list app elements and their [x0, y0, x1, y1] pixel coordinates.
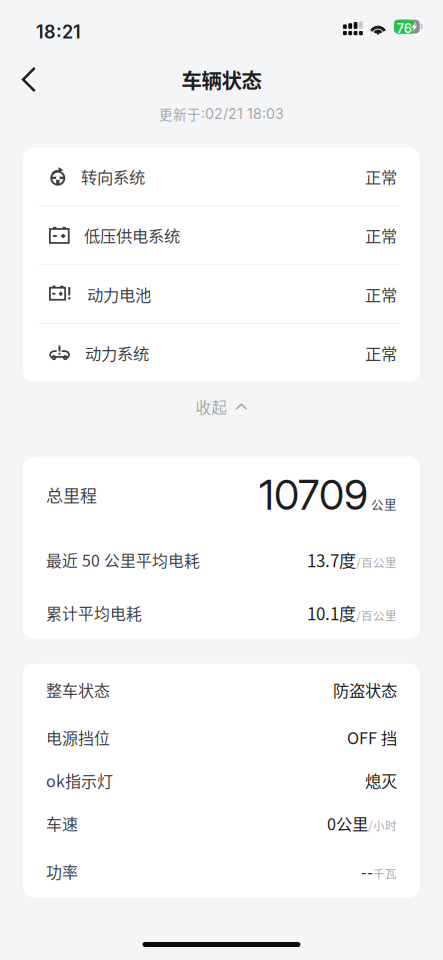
staticText: 低压供电系统 [84, 223, 180, 247]
staticText: 正常 [365, 282, 397, 306]
button[interactable]: 整车状态 [23, 664, 420, 716]
staticText: 动力电池 [87, 282, 151, 306]
button[interactable]: 电源挡位 [23, 716, 420, 759]
button[interactable]: 车速 [23, 802, 420, 845]
staticText: 10.1度 [307, 600, 356, 625]
staticText: 更新于 [159, 104, 201, 123]
button[interactable]: Back [0, 54, 58, 104]
button[interactable]: 总里程 [23, 457, 420, 533]
staticText: 正常 [365, 223, 397, 247]
staticText: 功率 [46, 860, 78, 883]
staticText: 公里 [371, 495, 397, 513]
staticText: 最近 50 公里平均电耗 [46, 548, 200, 571]
button[interactable]: 转向系统 [23, 147, 420, 205]
staticText: 累计平均电耗 [46, 601, 142, 624]
button[interactable]: ok指示灯 [23, 759, 420, 802]
button[interactable]: 累计平均电耗 [23, 587, 420, 639]
staticText: 76 [397, 21, 412, 36]
staticText: 防盗状态 [333, 678, 397, 701]
staticText: 电源挡位 [46, 726, 110, 749]
staticText: 0公里 [327, 811, 368, 835]
button[interactable]: 最近 50 公里平均电耗 [23, 533, 420, 587]
button[interactable]: 动力系统 [23, 324, 420, 382]
staticText: 车辆状态 [181, 65, 261, 94]
button[interactable]: 功率 [23, 845, 420, 898]
staticText: 收起 [195, 395, 227, 418]
staticText: /百公里 [356, 554, 397, 570]
staticText: ok指示灯 [46, 769, 113, 792]
staticText: 10709 [259, 470, 368, 519]
button[interactable]: 动力电池 [23, 265, 420, 323]
staticText: :02/21 18:03 [201, 105, 284, 122]
staticText: 整车状态 [46, 678, 110, 701]
staticText: 千瓦 [373, 865, 397, 882]
staticText: -- [361, 859, 373, 883]
staticText: 动力系统 [85, 341, 149, 365]
staticText: 熄灭 [365, 768, 397, 792]
staticText: 车速 [46, 812, 78, 835]
button[interactable]: 低压供电系统 [23, 206, 420, 264]
staticText: 转向系统 [81, 165, 145, 188]
staticText: 正常 [365, 341, 397, 365]
button[interactable]: 收起 [195, 382, 247, 432]
staticText: OFF 挡 [347, 725, 397, 749]
staticText: 18:21 [36, 21, 81, 43]
staticText: /小时 [368, 817, 397, 834]
staticText: 13.7度 [307, 547, 356, 572]
staticText: 总里程 [46, 482, 97, 507]
staticText: /百公里 [356, 607, 397, 623]
staticText: 正常 [365, 165, 397, 188]
